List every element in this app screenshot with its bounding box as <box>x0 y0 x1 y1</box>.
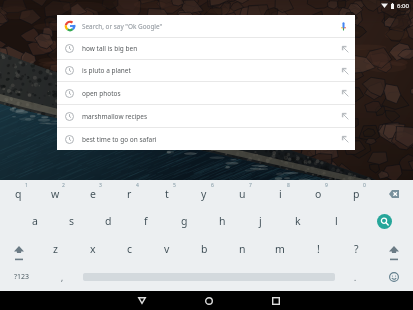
staticText: v <box>164 242 170 256</box>
staticText: h <box>219 214 226 228</box>
button[interactable]: is pluto a planet <box>57 60 355 81</box>
button[interactable]: ? <box>337 235 375 263</box>
staticText: q <box>15 187 22 201</box>
button[interactable]: f <box>127 207 165 235</box>
staticText: ? <box>354 242 359 256</box>
staticText: 7 <box>249 182 252 189</box>
staticText: 8 <box>287 182 290 189</box>
button[interactable]: r <box>111 180 148 207</box>
button[interactable]: h <box>203 207 241 235</box>
button[interactable]: Shift <box>0 235 37 263</box>
staticText: 9 <box>325 182 328 189</box>
staticText: b <box>201 242 208 256</box>
staticText: p <box>353 187 360 201</box>
button[interactable]: k <box>279 207 317 235</box>
button[interactable]: Search, or say "Ok Google" <box>57 15 355 37</box>
button[interactable]: w <box>37 180 74 207</box>
staticText: a <box>32 214 38 228</box>
button[interactable]: y <box>185 180 223 207</box>
button[interactable]: e <box>74 180 111 207</box>
other: Voice search <box>341 22 346 31</box>
staticText: 2 <box>62 182 65 189</box>
staticText: k <box>295 214 301 228</box>
staticText: ?123 <box>14 272 30 282</box>
button[interactable] <box>81 263 337 291</box>
button[interactable]: open photos <box>57 82 355 104</box>
staticText: how tall is big ben <box>82 44 138 53</box>
button[interactable]: v <box>148 235 185 263</box>
staticText: 5 <box>173 182 176 189</box>
button[interactable]: n <box>223 235 261 263</box>
staticText: j <box>259 214 262 228</box>
staticText: i <box>279 187 282 201</box>
button[interactable]: t <box>148 180 185 207</box>
button[interactable]: Shift <box>375 235 413 263</box>
button[interactable]: b <box>185 235 223 263</box>
staticText: 3 <box>99 182 102 189</box>
button[interactable]: g <box>165 207 203 235</box>
button[interactable]: Backspace <box>375 180 413 207</box>
staticText: m <box>275 242 285 256</box>
staticText: . <box>354 272 357 283</box>
staticText: marshmallow recipes <box>82 112 148 121</box>
staticText: g <box>181 214 188 228</box>
staticText: y <box>201 187 207 201</box>
staticText: 1 <box>25 182 28 189</box>
button[interactable]: o <box>299 180 337 207</box>
button[interactable]: Emoji <box>374 263 413 291</box>
staticText: e <box>90 187 96 201</box>
staticText: t <box>165 187 169 201</box>
staticText: best time to go on safari <box>82 135 157 144</box>
button[interactable]: c <box>111 235 148 263</box>
button[interactable]: Home <box>175 291 242 310</box>
staticText: 0 <box>363 182 366 189</box>
button[interactable]: z <box>37 235 74 263</box>
staticText: 6:00 <box>397 2 409 10</box>
staticText: f <box>144 214 148 228</box>
button[interactable]: s <box>53 207 90 235</box>
button[interactable]: , <box>44 263 81 291</box>
button[interactable]: i <box>261 180 299 207</box>
staticText: ! <box>317 242 320 256</box>
button[interactable]: u <box>223 180 261 207</box>
staticText: Search, or say "Ok Google" <box>82 22 163 31</box>
staticText: w <box>51 187 60 201</box>
staticText: c <box>127 242 133 256</box>
button[interactable]: ?123 <box>0 263 44 291</box>
staticText: u <box>239 187 246 201</box>
button[interactable]: a <box>16 207 53 235</box>
staticText: z <box>53 242 58 256</box>
button[interactable]: Back <box>108 291 175 310</box>
staticText: o <box>315 187 322 201</box>
button[interactable]: how tall is big ben <box>57 38 355 59</box>
staticText: open photos <box>82 89 121 98</box>
button[interactable]: marshmallow recipes <box>57 105 355 127</box>
staticText: d <box>105 214 112 228</box>
staticText: , <box>61 272 64 283</box>
button[interactable]: d <box>90 207 127 235</box>
button[interactable]: best time to go on safari <box>57 128 355 150</box>
button[interactable]: l <box>317 207 355 235</box>
button[interactable]: x <box>74 235 111 263</box>
staticText: r <box>127 187 132 201</box>
button[interactable]: p <box>337 180 375 207</box>
staticText: is pluto a planet <box>82 66 131 75</box>
button[interactable]: Recents <box>242 291 309 310</box>
button[interactable]: m <box>261 235 299 263</box>
staticText: n <box>239 242 246 256</box>
staticText: l <box>335 214 338 228</box>
staticText: s <box>69 214 75 228</box>
button[interactable]: j <box>241 207 279 235</box>
button[interactable]: q <box>0 180 37 207</box>
button[interactable]: ! <box>299 235 337 263</box>
staticText: 6 <box>211 182 214 189</box>
staticText: x <box>90 242 96 256</box>
staticText: 4 <box>136 182 139 189</box>
button[interactable]: Search <box>355 207 413 235</box>
